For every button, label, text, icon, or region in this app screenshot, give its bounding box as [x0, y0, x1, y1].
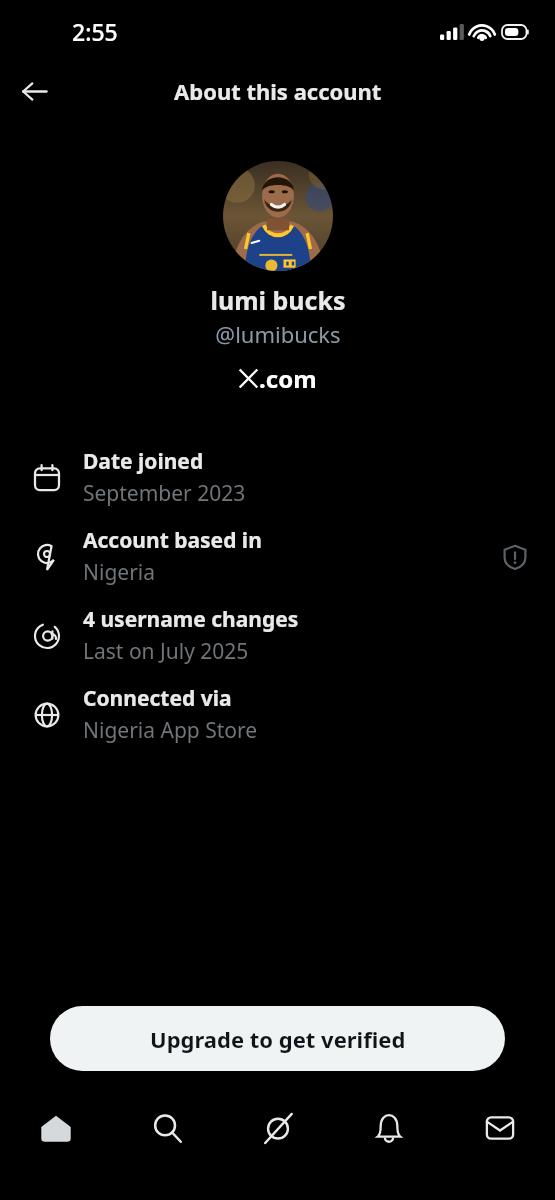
staticText: Date joined — [83, 447, 204, 476]
button[interactable]: Grok — [222, 1102, 333, 1154]
staticText: Connected via — [83, 684, 232, 713]
staticText: .com — [259, 362, 317, 395]
staticText: Account based in — [83, 526, 262, 555]
button[interactable]: Back — [8, 65, 60, 117]
staticText: 2:55 — [72, 16, 118, 47]
staticText: Last on July 2025 — [83, 637, 249, 666]
button[interactable]: Upgrade to get verified — [50, 1006, 505, 1071]
button[interactable]: Home — [0, 1102, 111, 1154]
staticText: lumi bucks — [210, 283, 346, 317]
staticText: September 2023 — [83, 479, 246, 508]
button[interactable]: Account based in — [0, 517, 555, 596]
button[interactable]: Notifications — [333, 1102, 444, 1154]
button[interactable]: .com — [238, 362, 317, 395]
button[interactable]: Messages — [444, 1102, 555, 1154]
staticText: Nigeria — [83, 558, 156, 587]
staticText: Nigeria App Store — [83, 716, 258, 745]
button[interactable]: Connected via — [0, 675, 555, 754]
button[interactable]: Date joined — [0, 438, 555, 517]
button[interactable]: Account location info — [495, 537, 535, 577]
button[interactable]: 4 username changes — [0, 596, 555, 675]
staticText: Upgrade to get verified — [150, 1024, 406, 1054]
button[interactable]: Search — [111, 1102, 222, 1154]
button[interactable] — [223, 161, 333, 271]
staticText: 4 username changes — [83, 605, 299, 634]
staticText: @lumibucks — [215, 319, 341, 349]
staticText: About this account — [174, 76, 382, 106]
